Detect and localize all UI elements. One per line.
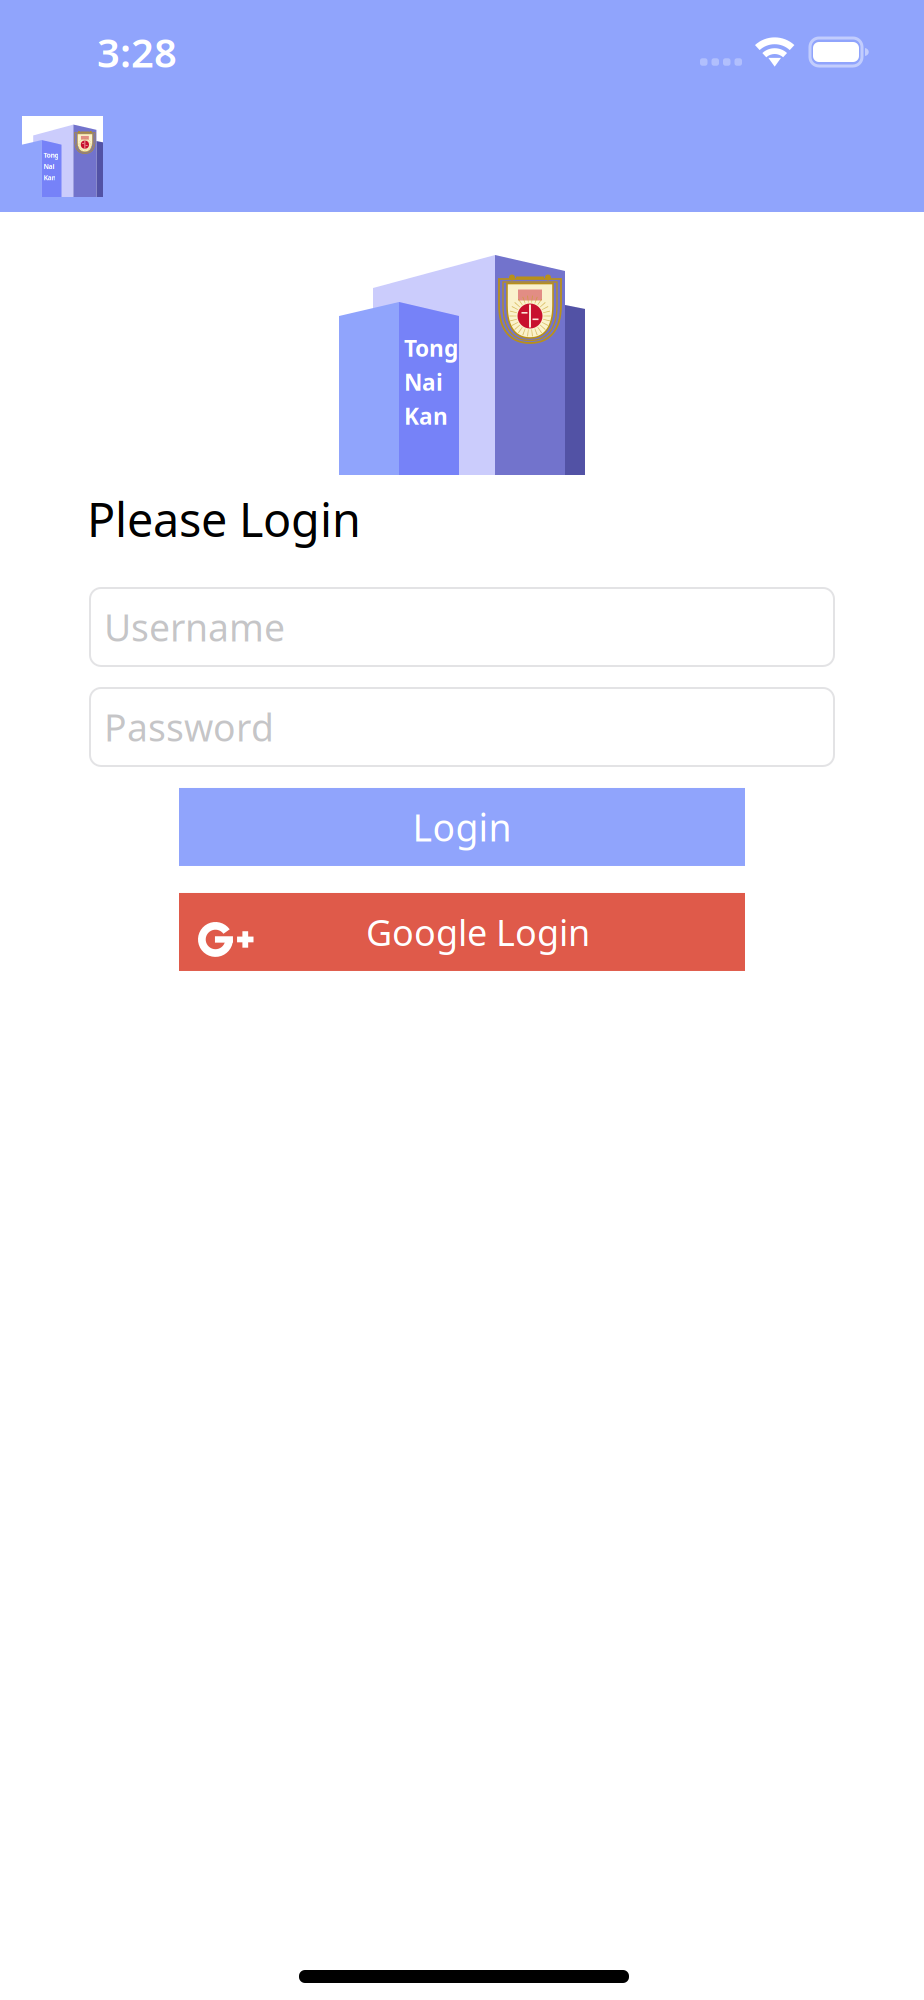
- button[interactable]: Username: [90, 588, 834, 666]
- staticText: Username: [104, 602, 285, 652]
- staticText: Tong: [43, 151, 58, 160]
- staticText: Tong: [404, 333, 458, 363]
- button[interactable]: Login: [179, 788, 745, 866]
- button[interactable]: Google Login: [179, 893, 745, 971]
- staticText: Kan: [404, 401, 448, 431]
- button[interactable]: Tong Nai Kan home: [22, 116, 103, 197]
- staticText: Login: [412, 802, 511, 852]
- staticText: Google Login: [366, 908, 590, 956]
- staticText: Password: [104, 702, 274, 752]
- staticText: Nai: [404, 367, 443, 397]
- staticText: Please Login: [87, 488, 361, 550]
- staticText: 3:28: [97, 25, 177, 78]
- button[interactable]: Password: [90, 688, 834, 766]
- staticText: Nai: [43, 162, 54, 171]
- staticText: Kan: [43, 173, 55, 182]
